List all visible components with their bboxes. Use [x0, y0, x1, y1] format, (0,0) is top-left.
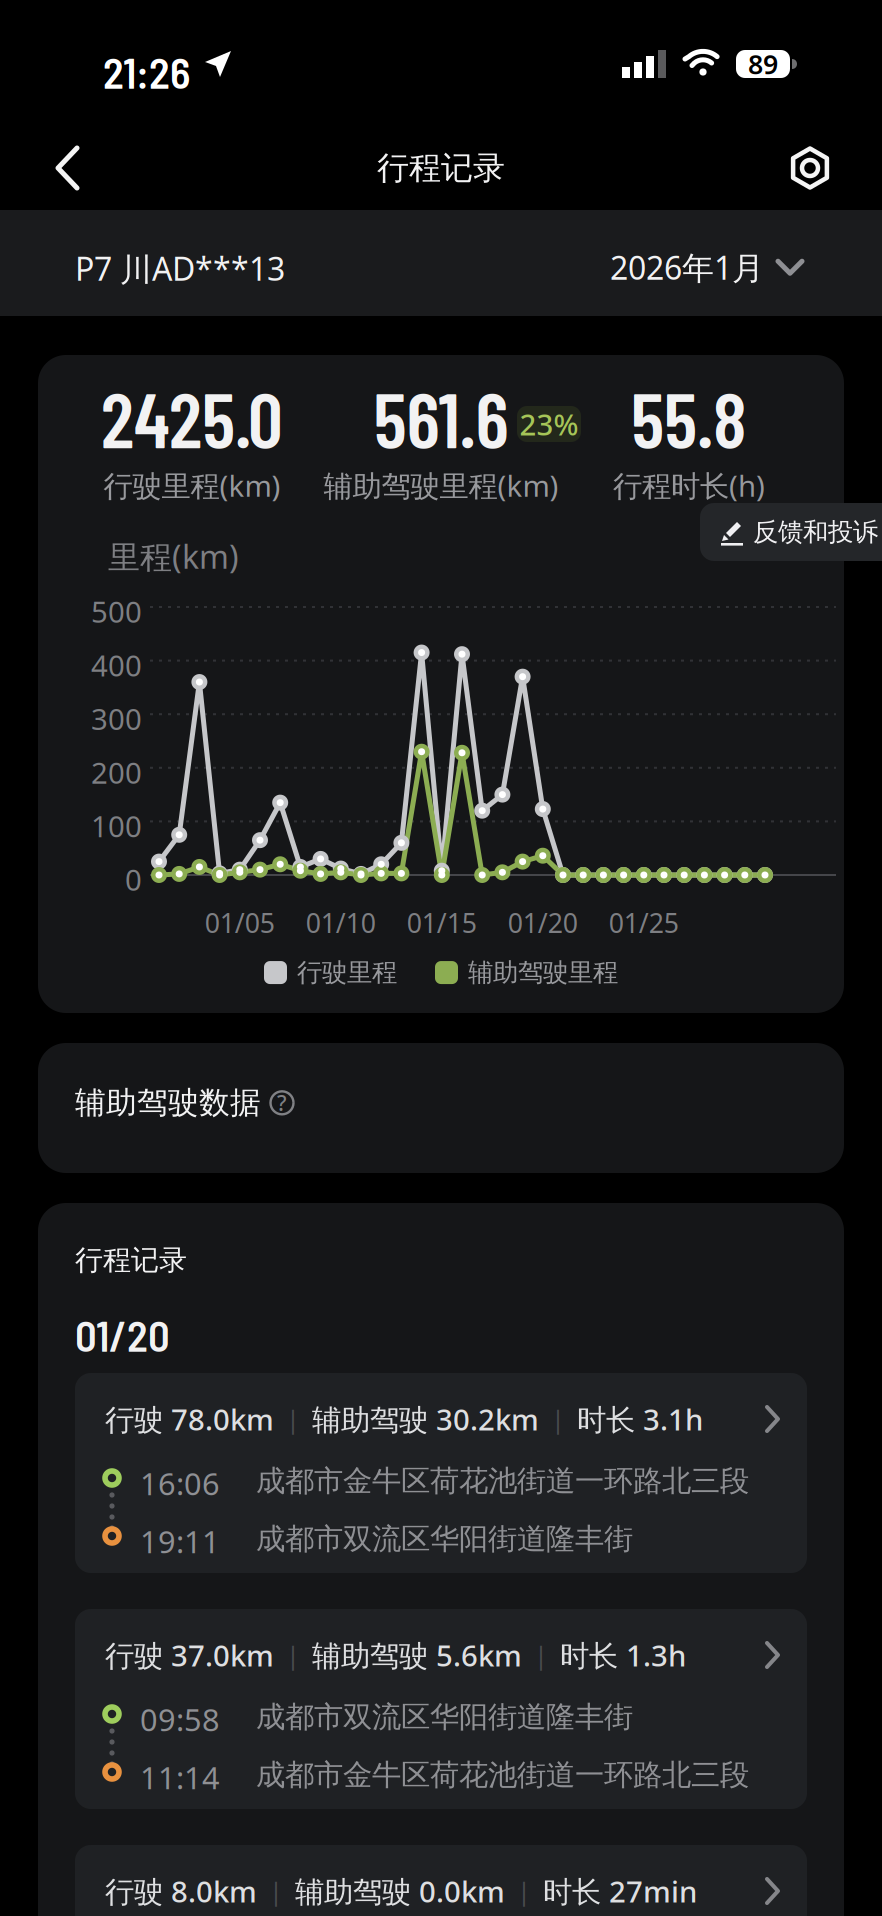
staticText: 行程记录 — [75, 1243, 187, 1277]
staticText: 100 — [91, 806, 142, 845]
staticText: 时长 1.3h — [560, 1635, 686, 1674]
button[interactable]: 反馈和投诉 — [700, 503, 882, 561]
staticText: 反馈和投诉 — [753, 516, 878, 547]
staticText: 成都市金牛区荷花池街道一环路北三段 — [256, 1463, 749, 1499]
staticText: | — [286, 1402, 300, 1436]
staticText: 行驶 8.0km — [105, 1871, 257, 1910]
staticText: ? — [277, 1089, 287, 1117]
staticText: 行程记录 — [377, 148, 505, 188]
staticText: 辅助驾驶数据 — [75, 1084, 261, 1122]
staticText: 01/05 — [205, 905, 275, 940]
staticText: 200 — [91, 753, 142, 792]
staticText: 行程时长(h) — [613, 466, 765, 505]
staticText: 成都市金牛区荷花池街道一环路北三段 — [256, 1757, 749, 1793]
staticText: 2425.0 — [101, 371, 283, 464]
staticText: 行驶 78.0km — [105, 1399, 274, 1438]
staticText: P7 川AD***13 — [75, 247, 285, 290]
staticText: 行驶 37.0km — [105, 1635, 274, 1674]
staticText: 01/20 — [508, 905, 578, 940]
staticText: 89 — [748, 46, 778, 82]
staticText: 01/15 — [407, 905, 477, 940]
staticText: 01/20 — [75, 1309, 170, 1360]
staticText: 01/25 — [609, 905, 679, 940]
staticText: 300 — [91, 699, 142, 738]
button[interactable]: Settings — [775, 133, 845, 203]
button[interactable]: Back — [33, 133, 103, 203]
staticText: 行驶里程(km) — [103, 466, 280, 505]
staticText: | — [534, 1638, 548, 1672]
staticText: 23% — [519, 404, 578, 443]
staticText: | — [517, 1874, 531, 1908]
button[interactable]: 辅助驾驶数据 — [38, 1043, 844, 1173]
button[interactable]: 行驶 37.0km — [75, 1609, 807, 1809]
staticText: 55.8 — [631, 371, 747, 464]
staticText: 400 — [91, 646, 142, 685]
staticText: | — [286, 1638, 300, 1672]
staticText: 辅助驾驶 30.2km — [312, 1399, 539, 1438]
staticText: 500 — [91, 592, 142, 631]
staticText: 时长 27min — [543, 1871, 697, 1910]
staticText: 09:58 — [140, 1699, 220, 1740]
staticText: 成都市双流区华阳街道隆丰街 — [256, 1699, 633, 1735]
staticText: 辅助驾驶 5.6km — [312, 1635, 522, 1674]
staticText: | — [269, 1874, 283, 1908]
staticText: 辅助驾驶 0.0km — [295, 1871, 505, 1910]
staticText: 里程(km) — [108, 535, 239, 577]
staticText: 21:26 — [103, 46, 190, 97]
staticText: 行驶里程 — [297, 957, 397, 988]
staticText: | — [551, 1402, 565, 1436]
staticText: 辅助驾驶里程 — [468, 957, 618, 988]
button[interactable]: 行驶 8.0km — [75, 1845, 807, 1916]
staticText: 16:06 — [140, 1463, 220, 1504]
staticText: 0 — [125, 860, 142, 899]
button[interactable]: 2026年1月 — [610, 246, 804, 288]
staticText: 2026年1月 — [610, 246, 764, 288]
staticText: 561.6 — [373, 371, 508, 464]
staticText: 辅助驾驶里程(km) — [323, 466, 558, 505]
staticText: 01/10 — [306, 905, 376, 940]
staticText: 11:14 — [140, 1757, 220, 1798]
staticText: 19:11 — [140, 1521, 220, 1562]
button[interactable]: 行驶 78.0km — [75, 1373, 807, 1573]
staticText: 成都市双流区华阳街道隆丰街 — [256, 1521, 633, 1557]
staticText: 时长 3.1h — [577, 1399, 703, 1438]
